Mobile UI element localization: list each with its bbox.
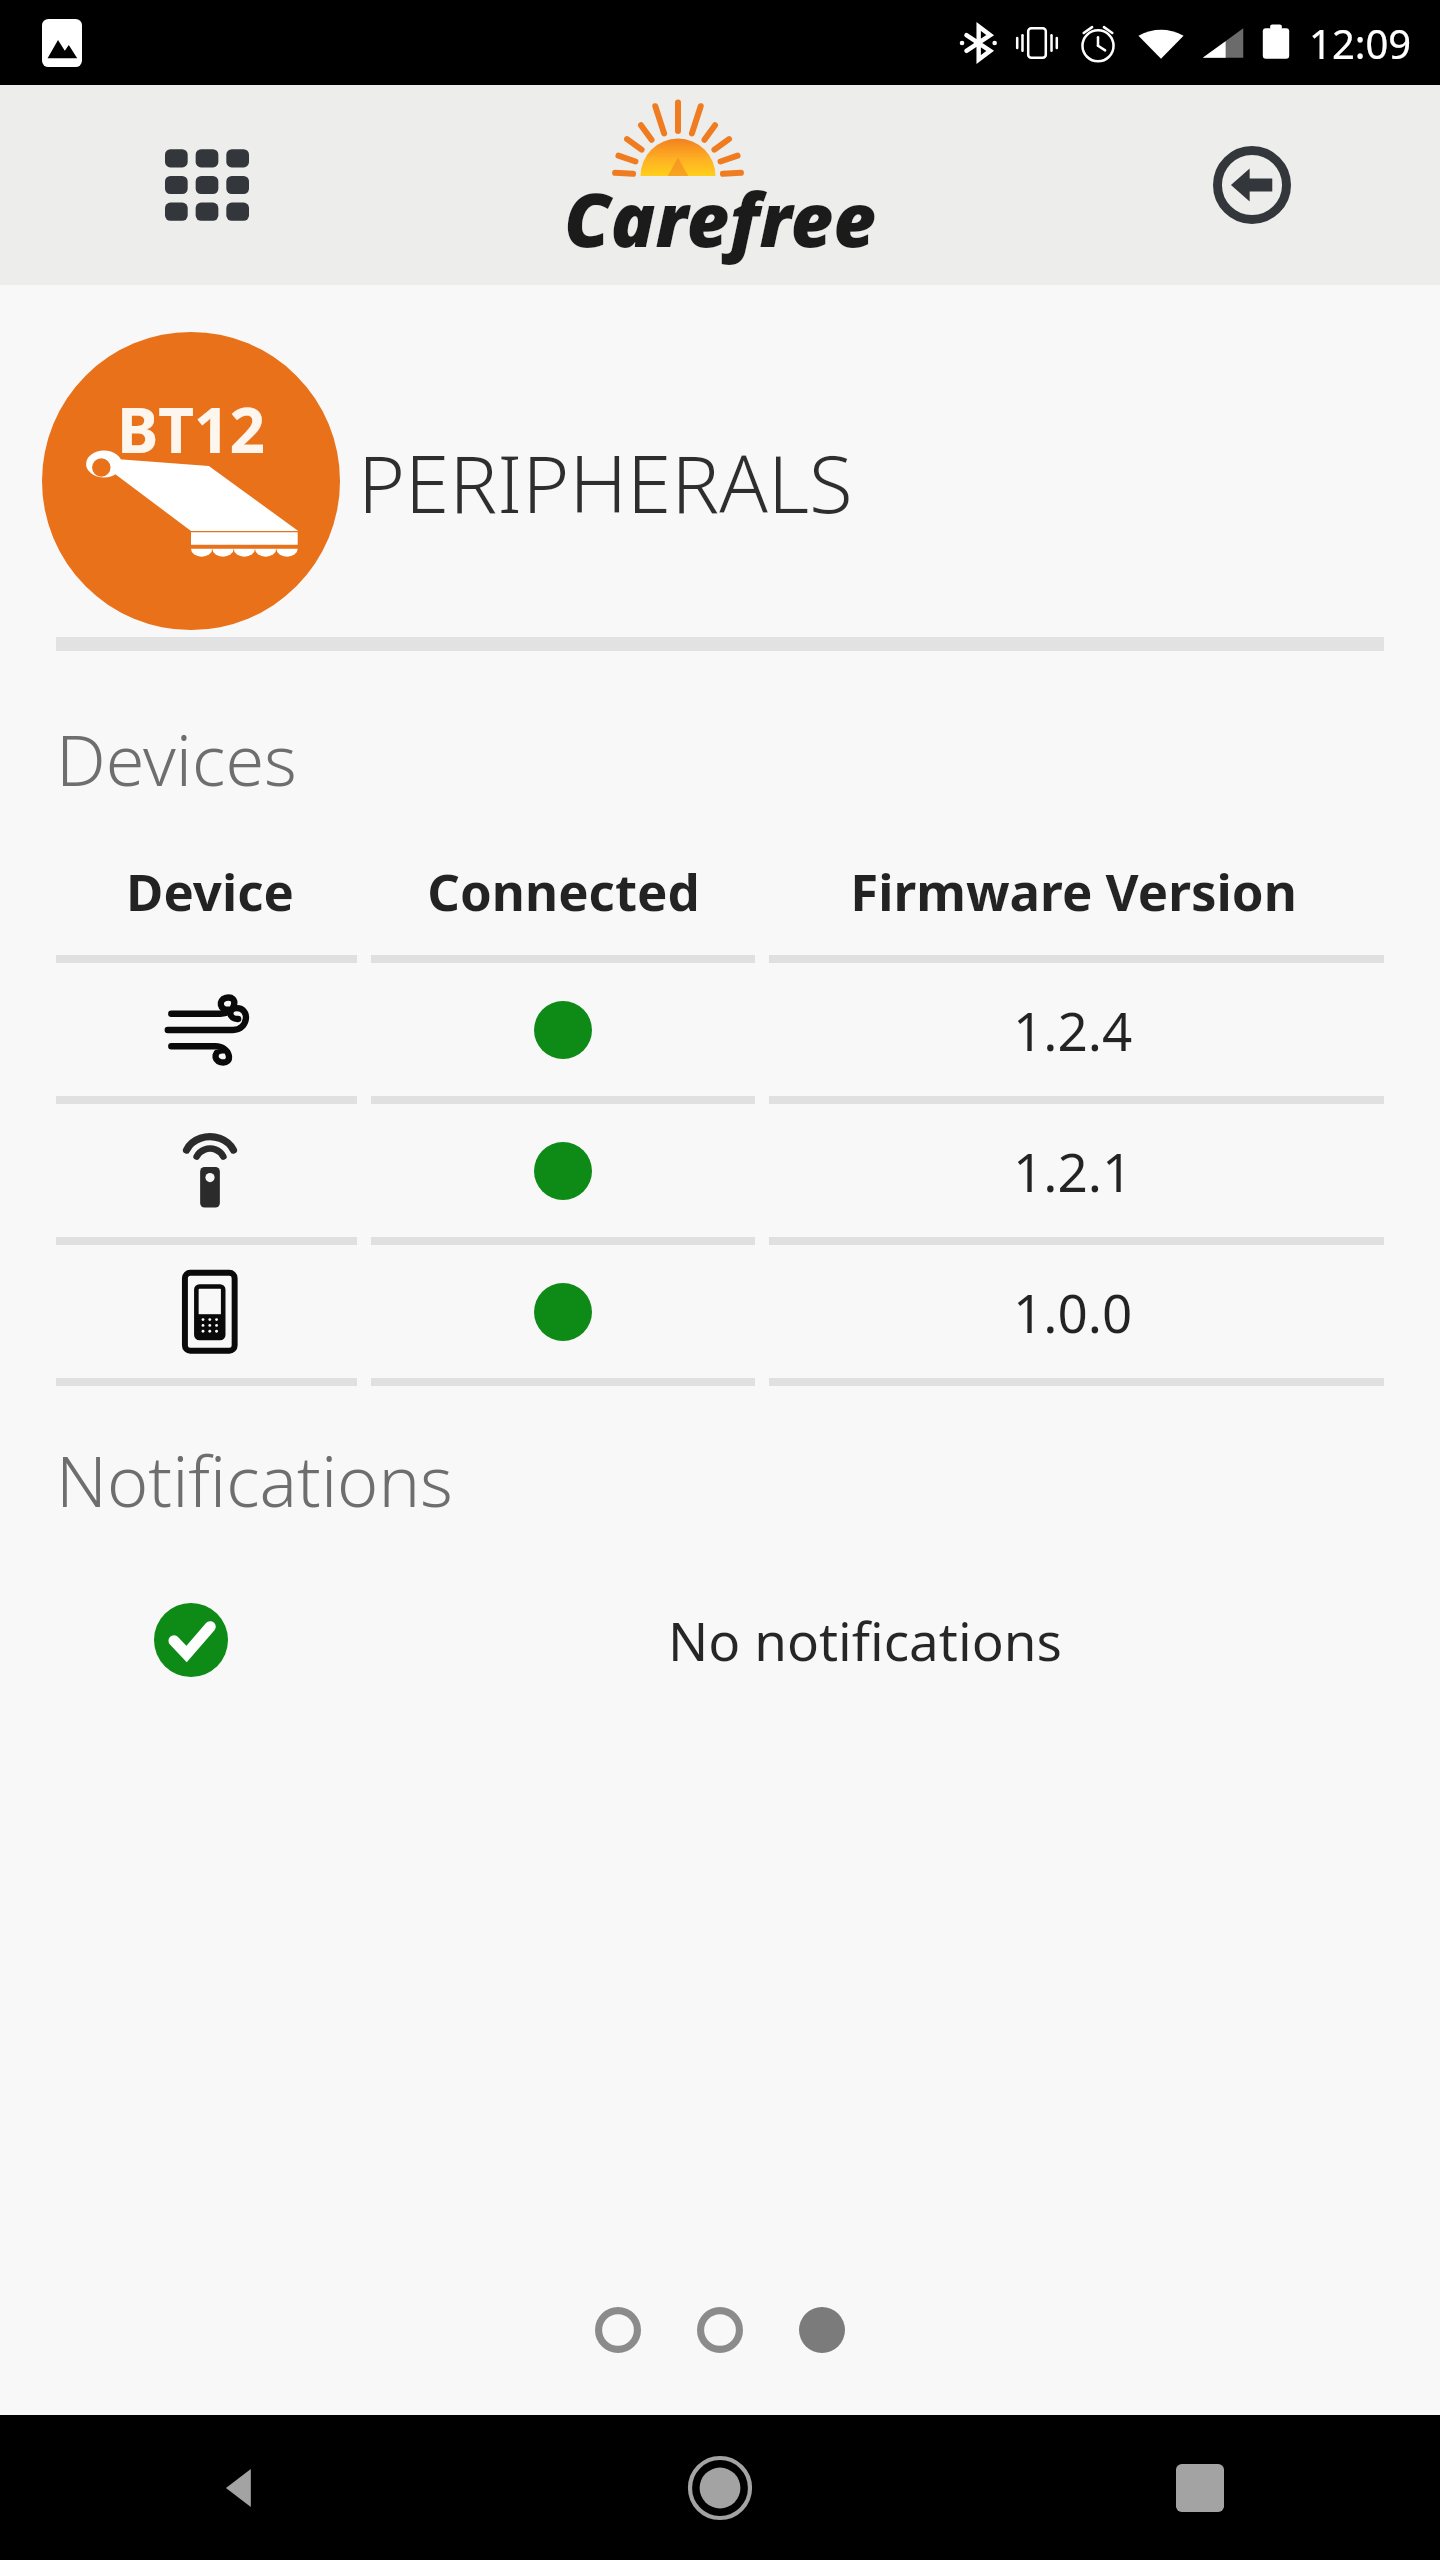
staticText: No notifications bbox=[668, 1604, 1062, 1676]
button[interactable]: Recent apps bbox=[960, 2415, 1440, 2560]
staticText: 1.0.0 bbox=[1013, 1276, 1133, 1348]
button[interactable]: 1.2.4 bbox=[0, 963, 1440, 1096]
button[interactable]: Back bbox=[0, 2415, 480, 2560]
staticText: Devices bbox=[56, 711, 297, 806]
staticText: 1.2.1 bbox=[1013, 1135, 1133, 1207]
staticText: Connected bbox=[427, 856, 700, 925]
button[interactable]: Go to page bbox=[587, 2299, 649, 2361]
button[interactable]: Go to page bbox=[689, 2299, 751, 2361]
staticText: Device bbox=[126, 856, 294, 925]
staticText: 12:09 bbox=[1309, 16, 1412, 70]
button[interactable]: Current page bbox=[791, 2299, 853, 2361]
staticText: 1.2.4 bbox=[1013, 994, 1133, 1066]
button[interactable]: Back bbox=[1192, 125, 1312, 245]
button[interactable]: 1.2.1 bbox=[0, 1104, 1440, 1237]
button[interactable]: Apps menu bbox=[142, 120, 272, 250]
staticText: PERIPHERALS bbox=[358, 427, 853, 536]
staticText: Notifications bbox=[56, 1432, 453, 1527]
button[interactable]: 1.0.0 bbox=[0, 1245, 1440, 1378]
staticText: Firmware Version bbox=[850, 856, 1297, 925]
staticText: Carefree bbox=[564, 168, 877, 269]
staticText: BT12 bbox=[117, 387, 265, 471]
button[interactable]: Home bbox=[480, 2415, 960, 2560]
